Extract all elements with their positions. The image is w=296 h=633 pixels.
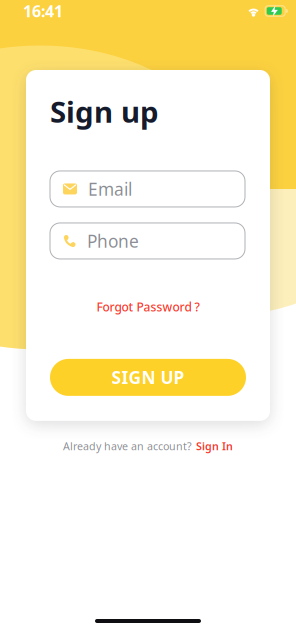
button[interactable]: Sign In [196, 439, 233, 453]
staticText: Email [88, 177, 132, 200]
staticText: Forgot Password ? [96, 299, 199, 315]
button[interactable]: Forgot Password ? [50, 299, 246, 315]
staticText: Sign In [196, 439, 233, 453]
staticText: Phone [87, 229, 139, 252]
staticText: Sign up [50, 92, 159, 131]
staticText: 16:41 [23, 0, 63, 22]
staticText: SIGN UP [111, 366, 184, 389]
staticText: Already have an account? [63, 439, 192, 453]
button[interactable]: SIGN UP [50, 359, 246, 396]
